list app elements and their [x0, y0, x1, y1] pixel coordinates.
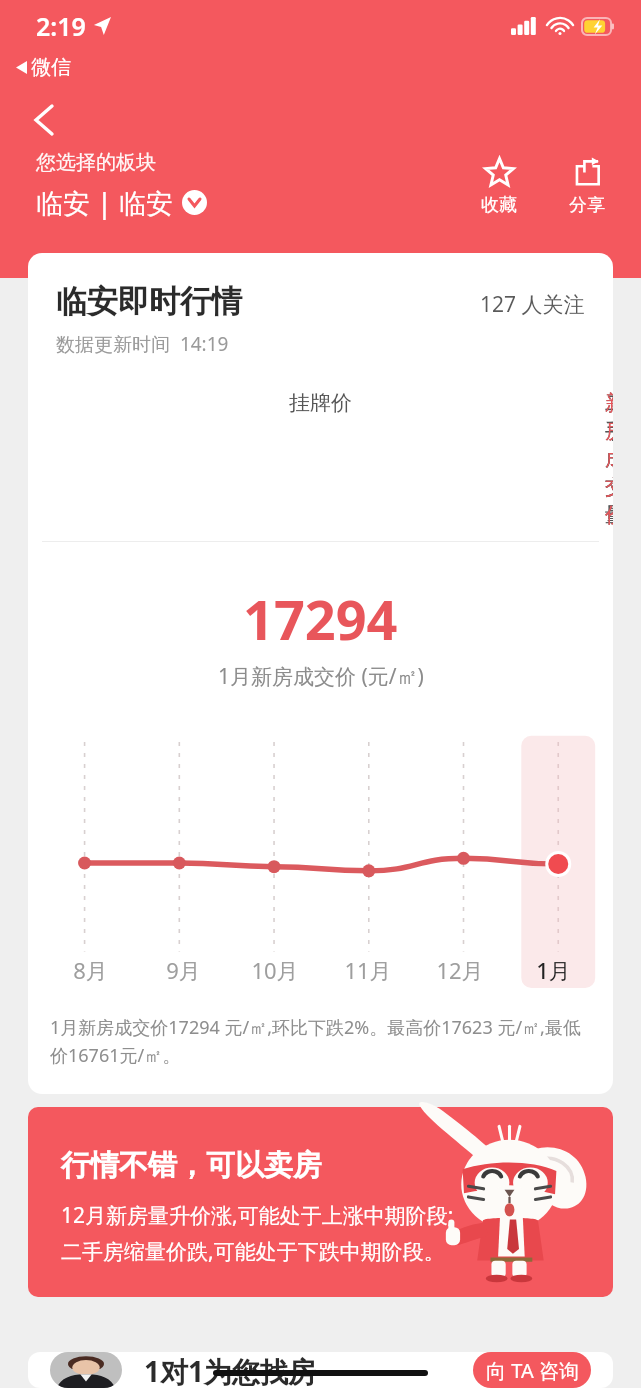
button[interactable]: 向 TA 咨询	[473, 1352, 591, 1388]
staticText: 2:19	[36, 9, 86, 43]
staticText: 10月	[251, 955, 299, 985]
staticText: 临安即时行情	[56, 282, 242, 321]
staticText: 挂牌价	[289, 390, 352, 416]
button[interactable]: 分享	[559, 155, 615, 219]
staticText: 1对1为您找房	[144, 1352, 317, 1388]
staticText: 向 TA 咨询	[486, 1357, 579, 1384]
staticText: 1月新房成交价 (元/㎡)	[218, 662, 424, 691]
button[interactable]: Back	[22, 98, 66, 142]
button[interactable]: 挂牌价	[42, 390, 599, 429]
staticText: 分享	[569, 194, 605, 217]
staticText: 9月	[166, 955, 201, 985]
button[interactable]: 收藏	[471, 155, 527, 219]
staticText: 12月新房量升价涨,可能处于上涨中期阶段;	[61, 1201, 454, 1230]
staticText: 1月新房成交价17294 元/㎡,环比下跌2%。最高价17623 元/㎡,最低价…	[50, 1015, 591, 1068]
staticText: 数据更新时间 14:19	[56, 331, 229, 357]
staticText: 微信	[31, 55, 71, 80]
staticText: 11月	[344, 955, 392, 985]
staticText: 二手房缩量价跌,可能处于下跌中期阶段。	[61, 1237, 445, 1266]
staticText: 收藏	[481, 194, 517, 217]
staticText: 您选择的板块	[36, 150, 156, 175]
button[interactable]: 临安 | 临安	[36, 184, 207, 221]
staticText: 127 人关注	[480, 290, 585, 319]
staticText: 17294	[243, 582, 398, 656]
button[interactable]	[28, 1107, 613, 1297]
staticText: 12月	[436, 955, 484, 985]
button[interactable]: 1对1为您找房	[28, 1352, 613, 1388]
staticText: 临安 | 临安	[36, 184, 173, 221]
staticText: 1月	[536, 955, 571, 985]
staticText: 8月	[73, 955, 108, 985]
staticText: 行情不错，可以卖房	[61, 1147, 322, 1184]
